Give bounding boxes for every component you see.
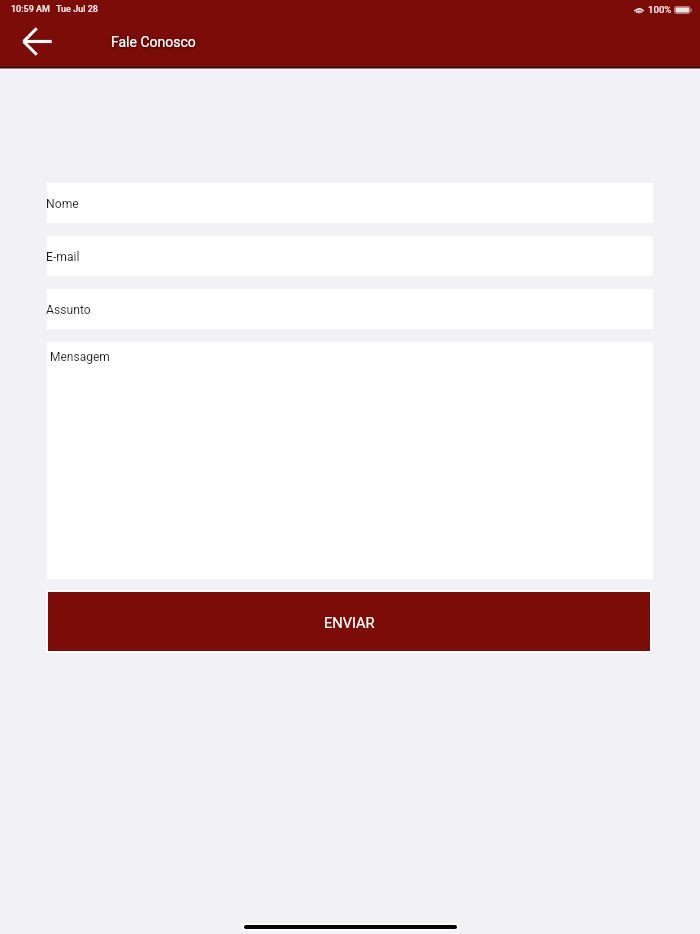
staticText: 10:59 AM bbox=[11, 4, 50, 15]
staticText: ENVIAR bbox=[324, 614, 375, 631]
staticText: 100% bbox=[648, 4, 672, 15]
staticText: Fale Conosco bbox=[111, 34, 196, 50]
button[interactable]: Nome bbox=[47, 183, 653, 223]
staticText: Nome bbox=[46, 197, 79, 211]
button[interactable]: E-mail bbox=[47, 236, 653, 276]
button[interactable]: ENVIAR bbox=[48, 592, 650, 651]
staticText: Tue Jul 28 bbox=[56, 4, 98, 15]
button[interactable]: Mensagem bbox=[47, 342, 653, 579]
staticText: Assunto bbox=[46, 303, 91, 317]
staticText: E-mail bbox=[46, 250, 80, 264]
staticText: Mensagem bbox=[50, 350, 110, 364]
button[interactable]: Assunto bbox=[47, 289, 653, 329]
button[interactable]: Back bbox=[20, 25, 53, 58]
